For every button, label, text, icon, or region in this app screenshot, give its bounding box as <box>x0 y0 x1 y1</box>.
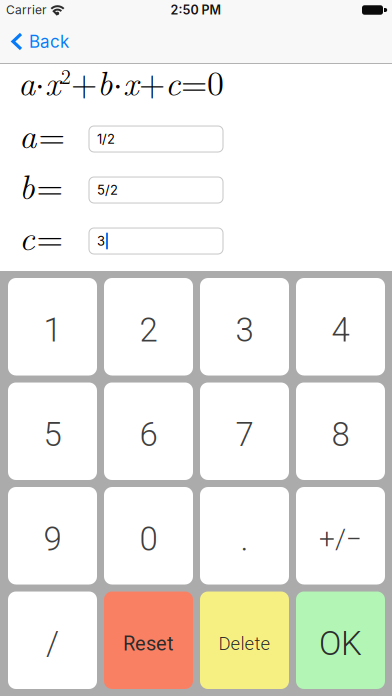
staticText: 5 <box>43 415 61 454</box>
staticText: 4 <box>331 311 349 350</box>
staticText: 9 <box>43 520 61 559</box>
staticText: / <box>46 624 59 663</box>
staticText: 0 <box>139 520 157 559</box>
button[interactable]: 3 <box>200 278 289 375</box>
staticText: 5/2 <box>97 182 118 198</box>
staticText: 6 <box>139 415 157 454</box>
button[interactable]: 8 <box>296 382 385 480</box>
staticText: 2:50 PM <box>170 2 221 17</box>
button[interactable]: 7 <box>200 382 289 480</box>
button[interactable]: 1 <box>8 278 97 375</box>
staticText: +/− <box>319 523 362 556</box>
staticText: = <box>36 211 63 260</box>
button[interactable]: OK <box>296 591 385 689</box>
button[interactable]: Coefficient a <box>89 126 223 152</box>
staticText: Carrier <box>6 3 47 17</box>
staticText: . <box>240 520 248 559</box>
button[interactable]: +/− <box>296 487 385 584</box>
button[interactable]: Reset <box>104 591 193 689</box>
staticText: 7 <box>235 415 253 454</box>
button[interactable]: / <box>8 591 97 689</box>
button[interactable]: 5 <box>8 382 97 480</box>
staticText: c <box>19 211 35 260</box>
button[interactable]: Coefficient c <box>89 228 223 254</box>
staticText: = <box>36 160 63 209</box>
staticText: Back <box>29 31 69 52</box>
staticText: b <box>19 160 35 209</box>
staticText: 1/2 <box>97 131 115 147</box>
staticText: 8 <box>331 415 349 454</box>
staticText: a·x2+b·x+c=0 <box>18 57 224 105</box>
staticText: OK <box>319 624 362 663</box>
staticText: 3 <box>97 233 105 249</box>
button[interactable]: Coefficient b <box>89 177 223 203</box>
staticText: 2 <box>139 311 157 350</box>
staticText: Reset <box>123 632 174 655</box>
button[interactable]: 0 <box>104 487 193 584</box>
button[interactable]: Back <box>0 31 69 52</box>
button[interactable]: Delete <box>200 591 289 689</box>
staticText: Delete <box>218 633 270 655</box>
button[interactable]: . <box>200 487 289 584</box>
button[interactable]: 2 <box>104 278 193 375</box>
staticText: = <box>38 109 65 158</box>
button[interactable]: 6 <box>104 382 193 480</box>
staticText: 3 <box>235 311 253 350</box>
staticText: 1 <box>43 311 61 350</box>
staticText: a <box>19 109 37 158</box>
button[interactable]: 9 <box>8 487 97 584</box>
button[interactable]: 4 <box>296 278 385 375</box>
